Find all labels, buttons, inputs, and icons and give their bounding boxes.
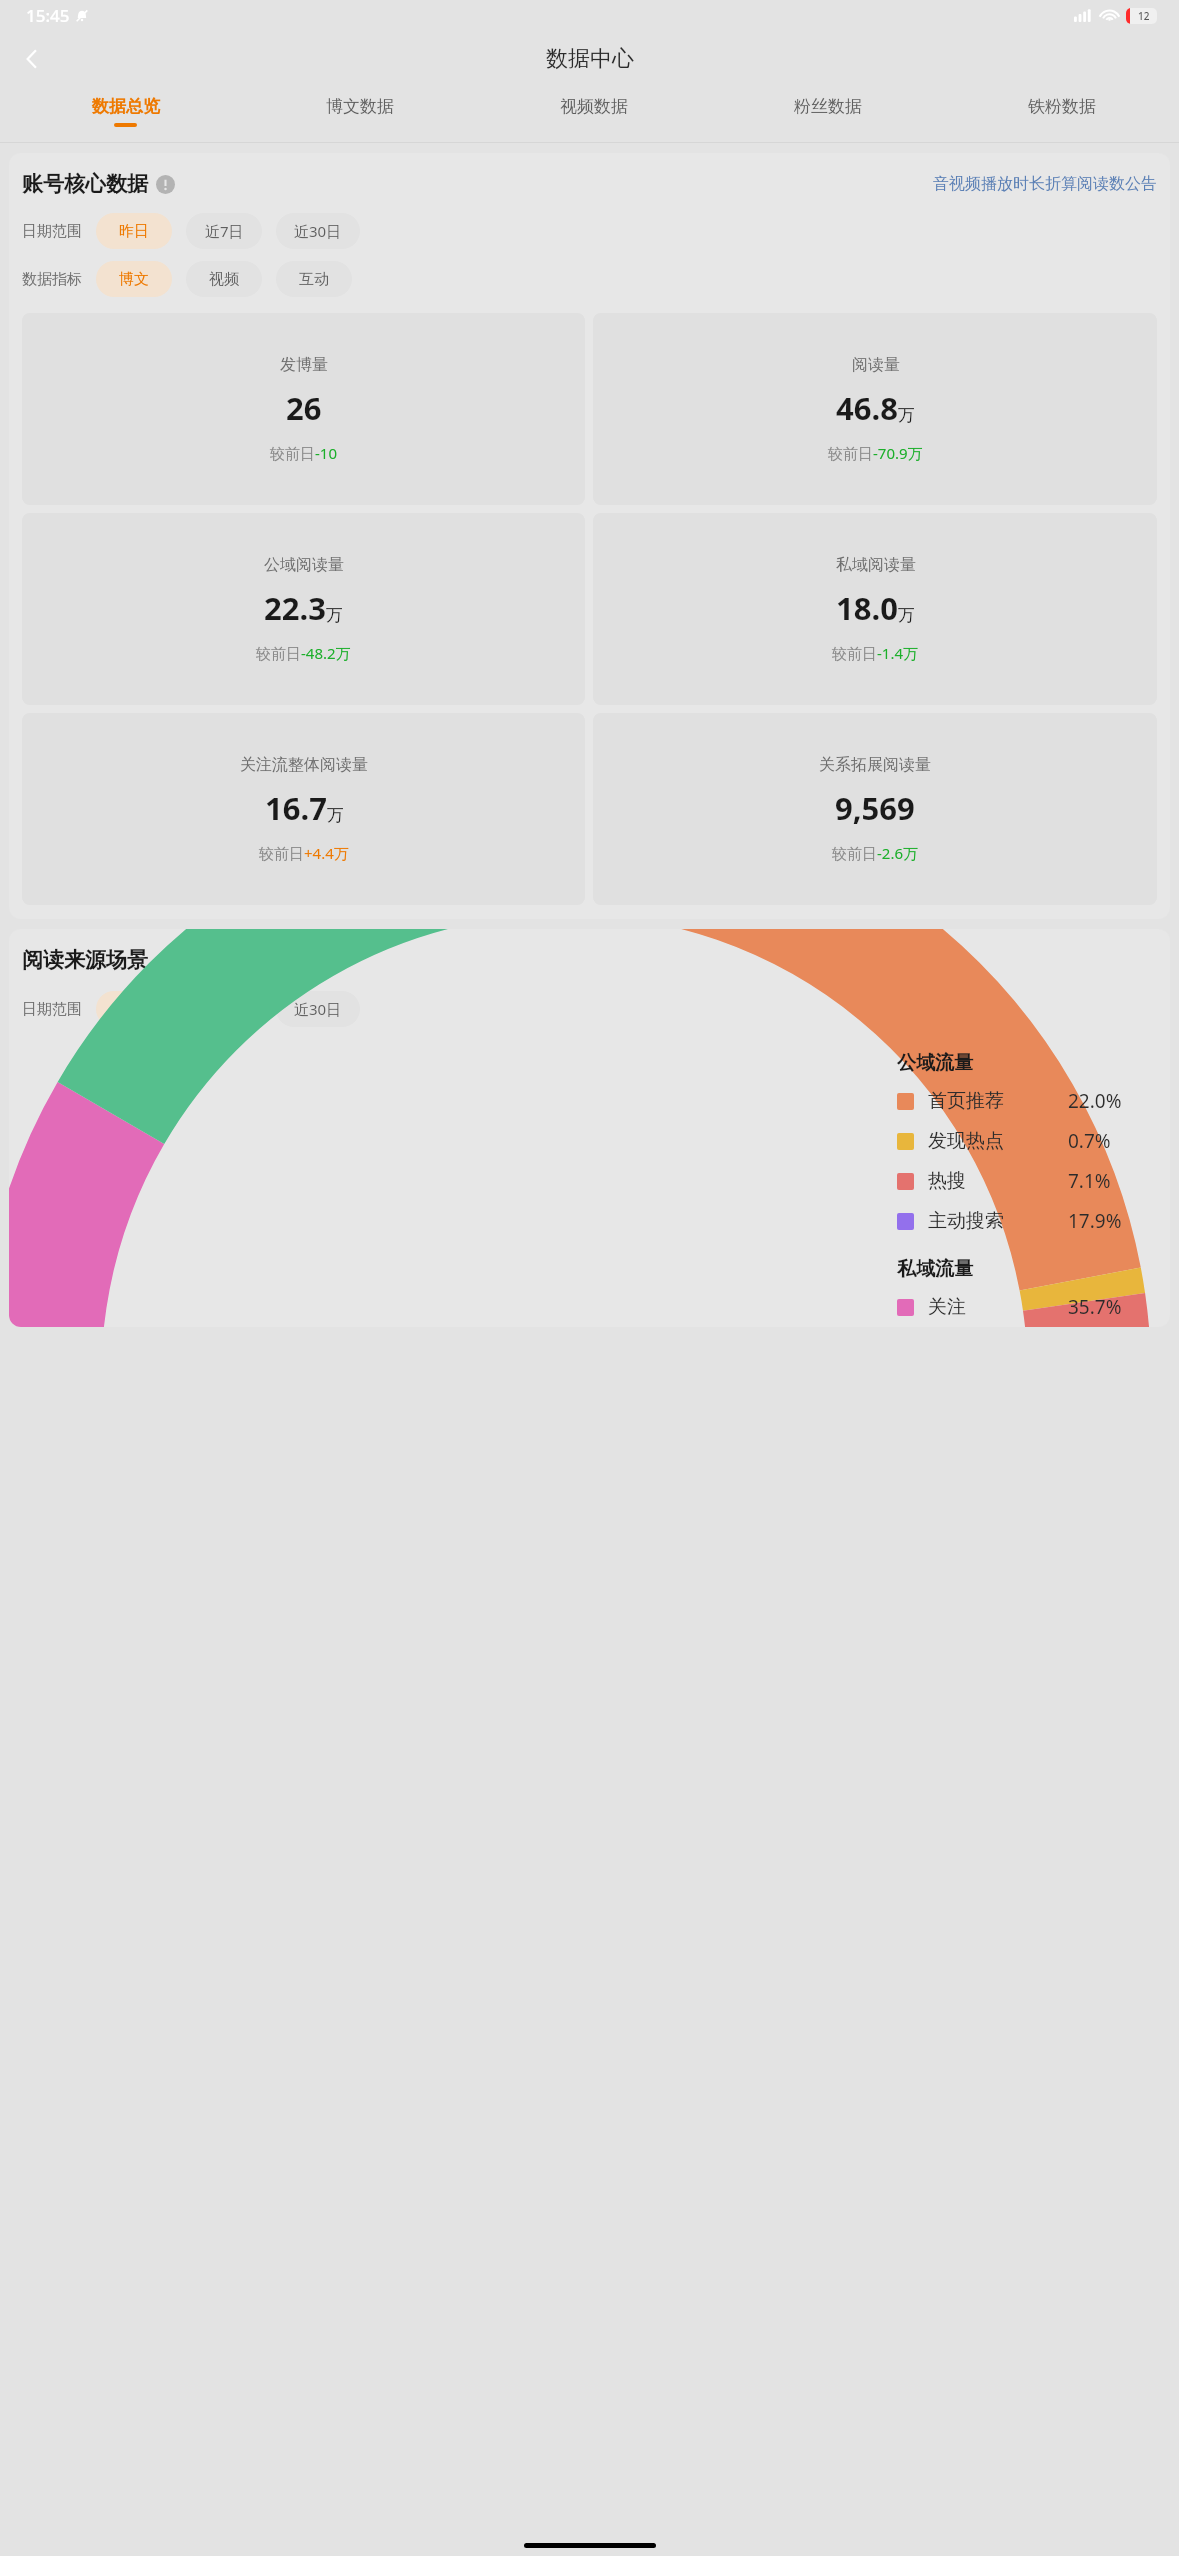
staticText: 18.0 [836,587,898,629]
staticText: 阅读来源场景 [22,947,148,973]
button[interactable]: 铁粉数据 [945,87,1179,142]
button[interactable]: 近30日 [276,213,360,249]
staticText: 万 [898,605,915,626]
staticText: 日期范围 [22,222,82,241]
staticText: 视频数据 [560,96,628,117]
staticText: 较前日-48.2万 [256,643,351,663]
staticText: 12 [1138,9,1150,23]
staticText: 较前日-10 [270,443,337,463]
button[interactable]: 公域阅读量 [22,513,585,705]
staticText: 26 [286,387,322,429]
button[interactable]: 昨日 [96,991,172,1027]
staticText: 万 [327,805,344,826]
staticText: 日期范围 [22,1000,82,1019]
staticText: 数据指标 [22,270,82,289]
staticText: 博文 [119,270,149,289]
staticText: 16.7 [265,787,327,829]
button[interactable]: Info [156,175,175,194]
button[interactable]: 博文数据 [243,87,477,142]
staticText: 较前日+4.4万 [259,843,349,863]
staticText: 7.1% [1068,1168,1111,1194]
staticText: 私域流量 [897,1257,973,1281]
button[interactable]: 数据总览 [8,87,243,142]
staticText: 视频 [209,270,239,289]
staticText: 账号核心数据 [22,171,148,197]
staticText: 昨日 [119,222,149,241]
staticText: 近7日 [205,221,244,241]
button[interactable]: 关注流整体阅读量 [22,713,585,905]
staticText: 博文数据 [326,96,394,117]
staticText: 数据总览 [92,96,160,117]
staticText: 17.9% [1068,1208,1122,1234]
staticText: 较前日-1.4万 [832,643,919,663]
button[interactable]: 首页推荐 [897,1081,1157,1121]
button[interactable]: 私域阅读量 [593,513,1157,705]
staticText: 46.8 [836,387,898,429]
button[interactable]: 关注 [897,1287,1157,1327]
button[interactable]: 互动 [276,261,352,297]
button[interactable]: 近7日 [186,213,262,249]
staticText: 万 [898,405,915,426]
staticText: 近30日 [294,221,342,241]
staticText: 阅读量 [852,355,900,375]
staticText: 铁粉数据 [1028,96,1096,117]
staticText: 22.0% [1068,1088,1122,1114]
staticText: 发现热点 [928,1129,1004,1153]
staticText: 关注 [928,1295,966,1319]
staticText: 22.3 [264,587,326,629]
staticText: 35.7% [1068,1294,1122,1320]
staticText: 公域流量 [897,1051,973,1075]
button[interactable]: 视频数据 [477,87,711,142]
button[interactable]: 音视频播放时长折算阅读数公告 [933,174,1157,194]
staticText: 发博量 [280,355,328,375]
button[interactable]: 关系拓展阅读量 [593,713,1157,905]
staticText: 0.7% [1068,1128,1111,1154]
staticText: 数据中心 [546,45,634,73]
staticText: 互动 [299,270,329,289]
button[interactable]: 主动搜索 [897,1201,1157,1241]
button[interactable]: 昨日 [96,213,172,249]
staticText: 私域阅读量 [836,555,916,575]
staticText: 较前日-70.9万 [828,443,923,463]
button[interactable]: 发博量 [22,313,585,505]
staticText: 公域阅读量 [264,555,344,575]
staticText: 15:45 [26,4,70,27]
staticText: 首页推荐 [928,1089,1004,1113]
staticText: 较前日-2.6万 [832,843,919,863]
button[interactable]: 阅读量 [593,313,1157,505]
button[interactable]: 发现热点 [897,1121,1157,1161]
staticText: 热搜 [928,1169,966,1193]
button[interactable]: Back [8,35,56,83]
staticText: 近30日 [294,999,342,1019]
button[interactable]: 近30日 [276,991,360,1027]
staticText: 关系拓展阅读量 [819,755,931,775]
staticText: 粉丝数据 [794,96,862,117]
staticText: 关注流整体阅读量 [240,755,368,775]
button[interactable]: 博文 [96,261,172,297]
staticText: 9,569 [835,787,915,829]
staticText: 万 [326,605,343,626]
button[interactable]: 热搜 [897,1161,1157,1201]
staticText: 主动搜索 [928,1209,1004,1233]
button[interactable]: 视频 [186,261,262,297]
button[interactable]: 粉丝数据 [711,87,945,142]
